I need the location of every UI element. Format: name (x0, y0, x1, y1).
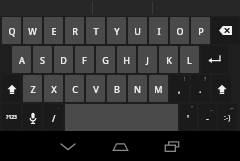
button[interactable]: M (149, 75, 168, 102)
button[interactable]: R (65, 17, 84, 44)
staticText: C (72, 83, 78, 95)
button[interactable]: S (33, 46, 52, 73)
button[interactable]: Enter (201, 46, 228, 73)
button[interactable]: Recent apps (156, 132, 188, 160)
button[interactable]: Y (107, 17, 126, 44)
staticText: ?123 (6, 114, 17, 121)
button[interactable]: T (86, 17, 105, 44)
staticText: J (146, 54, 149, 66)
button[interactable]: L (180, 46, 199, 73)
staticText: · (58, 105, 60, 112)
button[interactable]: ' (180, 104, 197, 131)
staticText: N (134, 83, 141, 95)
button[interactable]: Hide keyboard (52, 132, 84, 160)
button[interactable]: J (138, 46, 157, 73)
staticText: F (82, 54, 87, 66)
staticText: _ (210, 105, 213, 112)
staticText: Y (114, 25, 120, 37)
staticText: :-) (224, 113, 231, 123)
button[interactable]: K (159, 46, 178, 73)
staticText: Z (30, 83, 36, 95)
staticText: S (40, 54, 45, 66)
button[interactable]: Voice input (23, 104, 42, 131)
button[interactable]: A (12, 46, 31, 73)
button[interactable]: Q (2, 17, 21, 44)
button[interactable]: P (191, 17, 210, 44)
staticText: A (19, 54, 25, 66)
staticText: ' (187, 112, 190, 124)
button[interactable]: C (65, 75, 84, 102)
staticText: Q (8, 25, 16, 37)
button[interactable]: D (54, 46, 73, 73)
staticText: T (93, 25, 99, 37)
staticText: P (198, 25, 204, 37)
button[interactable]: G (96, 46, 115, 73)
staticText: B (114, 83, 120, 95)
button[interactable]: Shift (212, 75, 231, 102)
staticText: U (134, 25, 141, 37)
staticText: O (176, 25, 184, 37)
staticText: ? (204, 76, 207, 83)
button[interactable]: Symbols (2, 104, 21, 131)
staticText: ⌐ (230, 105, 235, 111)
staticText: E (51, 25, 57, 37)
staticText: G (102, 54, 109, 66)
staticText: . (199, 83, 202, 95)
button[interactable]: V (86, 75, 105, 102)
button[interactable]: Home (104, 132, 136, 160)
staticText: H (123, 54, 130, 66)
button[interactable]: N (128, 75, 147, 102)
button[interactable]: U (128, 17, 147, 44)
staticText: " (191, 105, 194, 112)
staticText: - (206, 112, 209, 124)
staticText: X (51, 83, 57, 95)
button[interactable]: W (23, 17, 42, 44)
button[interactable]: X (44, 75, 63, 102)
button[interactable]: Shift (2, 75, 21, 102)
button[interactable]: , (170, 75, 189, 102)
button[interactable]: E (44, 17, 63, 44)
staticText: R (72, 25, 78, 37)
staticText: D (60, 54, 67, 66)
button[interactable]: Backspace (212, 17, 239, 44)
staticText: V (93, 83, 99, 95)
button[interactable]: H (117, 46, 136, 73)
button[interactable]: - (199, 104, 216, 131)
staticText: L (187, 54, 192, 66)
staticText: ! (184, 76, 186, 83)
staticText: / (52, 112, 56, 124)
button[interactable]: / (44, 104, 63, 131)
button[interactable]: B (107, 75, 126, 102)
button[interactable]: . (191, 75, 210, 102)
staticText: , (178, 83, 181, 95)
button[interactable]: Emoji (218, 104, 237, 131)
button[interactable]: I (149, 17, 168, 44)
staticText: M (154, 83, 163, 95)
staticText: I (157, 25, 161, 37)
staticText: K (166, 54, 172, 66)
button[interactable]: O (170, 17, 189, 44)
button[interactable]: Z (23, 75, 42, 102)
button[interactable]: F (75, 46, 94, 73)
staticText: W (28, 25, 37, 37)
